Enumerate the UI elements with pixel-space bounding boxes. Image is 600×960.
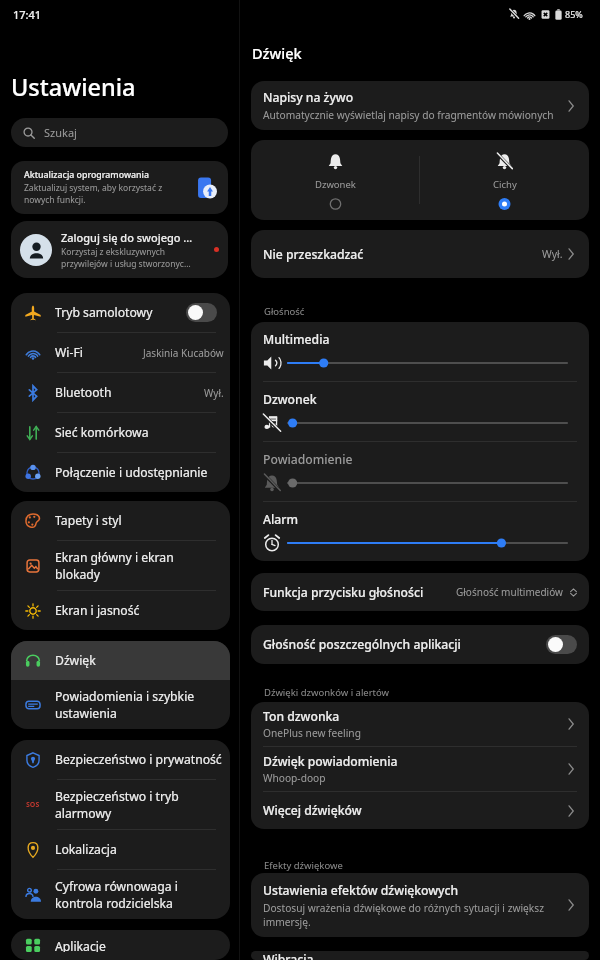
staticText: Więcej dźwięków xyxy=(263,802,362,819)
button[interactable]: Sieć komórkowa xyxy=(11,413,230,452)
staticText: Powiadomienie xyxy=(263,451,353,468)
button[interactable]: Ekran główny i ekran blokady xyxy=(11,541,230,590)
staticText: Sieć komórkowa xyxy=(55,424,224,441)
staticText: Aplikacje xyxy=(55,938,224,952)
button[interactable]: Połączenie i udostępnianie xyxy=(11,453,230,492)
staticText: OnePlus new feeling xyxy=(263,726,361,740)
staticText: Nie przeszkadzać xyxy=(263,246,542,263)
button[interactable]: SOS xyxy=(11,780,230,829)
staticText: Głośność xyxy=(264,305,305,318)
button[interactable]: Ekran i jasność xyxy=(11,591,230,630)
button[interactable]: Lokalizacja xyxy=(11,830,230,869)
button[interactable]: Aktualizacja oprogramowania xyxy=(11,161,228,214)
staticText: Automatycznie wyświetlaj napisy do fragm… xyxy=(263,108,554,122)
button[interactable]: Tapety i styl xyxy=(11,501,230,540)
staticText: Wył. xyxy=(204,386,224,400)
button[interactable]: Funkcja przycisku głośności xyxy=(251,573,589,611)
staticText: 17:41 xyxy=(13,7,42,22)
staticText: Tryb samolotowy xyxy=(55,304,180,321)
staticText: Głośność poszczególnych aplikacji xyxy=(263,636,546,653)
staticText: Dźwięk powiadomienia xyxy=(263,753,398,770)
staticText: Multimedia xyxy=(263,331,330,348)
staticText: Ustawienia xyxy=(11,71,136,103)
staticText: Napisy na żywo xyxy=(263,89,354,106)
staticText: Dzwonek xyxy=(315,178,356,191)
button[interactable]: Aplikacje xyxy=(11,930,230,960)
staticText: Tapety i styl xyxy=(55,512,224,529)
staticText: Wibracja xyxy=(263,951,578,960)
staticText: Wył. xyxy=(542,247,563,261)
button[interactable]: Powiadomienia i szybkie ustawienia xyxy=(11,680,230,729)
button[interactable]: Tryb samolotowy xyxy=(11,293,230,332)
staticText: Cyfrowa równowaga i kontrola rodzicielsk… xyxy=(55,878,224,911)
button[interactable]: Napisy na żywo xyxy=(251,81,589,130)
button[interactable]: Głośność poszczególnych aplikacji xyxy=(251,625,589,664)
staticText: Ton dzwonka xyxy=(263,708,340,725)
button[interactable]: Wi-Fi xyxy=(11,333,230,372)
staticText: Jaskinia Kucabów xyxy=(143,346,224,360)
staticText: Bezpieczeństwo i prywatność xyxy=(55,751,224,768)
button[interactable]: Szukaj xyxy=(11,118,228,147)
staticText: Aktualizacja oprogramowania xyxy=(24,169,149,181)
button[interactable]: Dzwonek xyxy=(251,140,419,220)
button[interactable]: Dźwięk xyxy=(11,641,230,680)
button[interactable]: Cyfrowa równowaga i kontrola rodzicielsk… xyxy=(11,870,230,919)
button[interactable]: Dźwięk powiadomienia xyxy=(251,747,589,791)
button[interactable]: Ustawienia efektów dźwiękowych xyxy=(251,873,589,937)
staticText: Efekty dźwiękowe xyxy=(264,859,343,872)
staticText: Ekran główny i ekran blokady xyxy=(55,549,224,582)
staticText: Lokalizacja xyxy=(55,841,224,858)
button[interactable]: Ton dzwonka xyxy=(251,702,589,746)
staticText: Zaktualizuj system, aby korzystać z nowy… xyxy=(24,182,189,206)
staticText: Bluetooth xyxy=(55,384,198,401)
staticText: Połączenie i udostępnianie xyxy=(55,464,224,481)
button[interactable]: Bluetooth xyxy=(11,373,230,412)
staticText: 85% xyxy=(565,8,583,20)
staticText: Dzwonek xyxy=(263,391,317,408)
staticText: Ustawienia efektów dźwiękowych xyxy=(263,882,459,899)
staticText: Ekran i jasność xyxy=(55,602,224,619)
staticText: Dźwięki dzwonków i alertów xyxy=(264,686,390,699)
button[interactable]: Cichy xyxy=(420,140,589,220)
staticText: Cichy xyxy=(493,178,517,191)
button[interactable]: Zaloguj się do swojego … xyxy=(11,221,228,278)
button[interactable]: Wibracja xyxy=(251,951,589,960)
button[interactable]: Nie przeszkadzać xyxy=(251,230,589,278)
button[interactable]: Toggle xyxy=(546,635,577,654)
staticText: Szukaj xyxy=(44,125,77,140)
staticText: Powiadomienia i szybkie ustawienia xyxy=(55,688,224,721)
staticText: Alarm xyxy=(263,511,298,528)
staticText: Dostosuj wrażenia dźwiękowe do różnych s… xyxy=(263,901,556,929)
button[interactable]: Bezpieczeństwo i prywatność xyxy=(11,740,230,779)
staticText: Głośność multimediów xyxy=(456,585,563,599)
staticText: Korzystaj z ekskluzywnych przywilejów i … xyxy=(61,246,209,270)
staticText: Dźwięk xyxy=(55,652,224,669)
button[interactable]: Toggle xyxy=(186,303,217,322)
staticText: Zaloguj się do swojego … xyxy=(61,230,193,245)
staticText: Bezpieczeństwo i tryb alarmowy xyxy=(55,788,224,821)
staticText: Whoop-doop xyxy=(263,771,326,785)
staticText: Wi-Fi xyxy=(55,344,137,361)
staticText: Funkcja przycisku głośności xyxy=(263,584,456,601)
staticText: Dźwięk xyxy=(252,43,302,63)
button[interactable]: Więcej dźwięków xyxy=(251,792,589,829)
staticText: SOS xyxy=(26,800,40,810)
